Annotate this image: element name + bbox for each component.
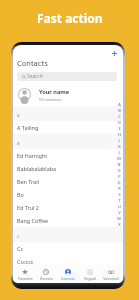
staticText: Cccccc	[17, 258, 34, 265]
staticText: A	[17, 113, 20, 118]
staticText: T	[118, 198, 121, 203]
staticText: Ed Harnight	[17, 152, 48, 159]
button[interactable]	[13, 83, 123, 106]
staticText: Keypad	[84, 276, 96, 281]
staticText: A Tailing	[17, 124, 39, 131]
staticText: U	[118, 204, 121, 209]
staticText: Fast action	[37, 10, 103, 26]
staticText: Cc	[17, 245, 23, 252]
button[interactable]: Ben Trail	[13, 175, 123, 188]
staticText: N	[117, 162, 121, 167]
staticText: Contacts	[61, 276, 75, 281]
button[interactable]: Bablabalablaba	[13, 162, 123, 175]
staticText: Q	[117, 180, 121, 185]
staticText: O	[117, 168, 121, 173]
button[interactable]: A Tailing	[13, 121, 123, 134]
button[interactable]: Keypad	[80, 269, 100, 281]
button[interactable]: Bo	[13, 188, 123, 201]
button[interactable]: Cccccc	[13, 255, 123, 268]
staticText: Bang Coffee	[17, 217, 49, 224]
staticText: R	[118, 186, 121, 191]
staticText: K	[118, 144, 121, 149]
staticText: B	[118, 108, 121, 113]
staticText: P	[118, 174, 121, 179]
staticText: L	[118, 150, 121, 155]
staticText: X	[118, 222, 121, 227]
staticText: Your name	[39, 88, 70, 96]
staticText: Recents	[40, 276, 53, 281]
staticText: Search	[27, 73, 43, 80]
button[interactable]: Contacts	[58, 269, 78, 281]
button[interactable]: Recents	[36, 269, 56, 281]
staticText: H	[118, 132, 121, 137]
staticText: B	[17, 141, 20, 146]
staticText: D	[118, 120, 121, 125]
staticText: Bablabalablaba	[17, 165, 57, 172]
button[interactable]: Ed Harnight	[13, 149, 123, 162]
staticText: Voicemail	[103, 276, 119, 281]
staticText: Favorites	[18, 276, 33, 281]
button[interactable]: Ed Trul 2	[13, 201, 123, 214]
button[interactable]: Search	[17, 72, 117, 81]
staticText: C	[118, 114, 121, 119]
staticText: C	[17, 234, 20, 239]
button[interactable]: Add contact	[108, 47, 120, 59]
staticText: S	[118, 192, 121, 197]
staticText: A	[118, 102, 121, 107]
staticText: Contacts	[17, 58, 48, 68]
staticText: Ed Trul 2	[17, 204, 39, 211]
button[interactable]: Voicemail	[101, 269, 121, 281]
staticText: E	[118, 126, 121, 131]
staticText: Bo	[17, 191, 24, 198]
staticText: M	[117, 156, 121, 161]
staticText: V	[118, 210, 121, 215]
staticText: Ben Trail	[17, 178, 39, 185]
button[interactable]: Bang Coffee	[13, 214, 123, 227]
staticText: 50 contacts	[39, 97, 62, 103]
button[interactable]: Favorites	[15, 269, 35, 281]
staticText: J	[118, 138, 120, 143]
button[interactable]: Cc	[13, 242, 123, 255]
staticText: W	[117, 216, 121, 221]
